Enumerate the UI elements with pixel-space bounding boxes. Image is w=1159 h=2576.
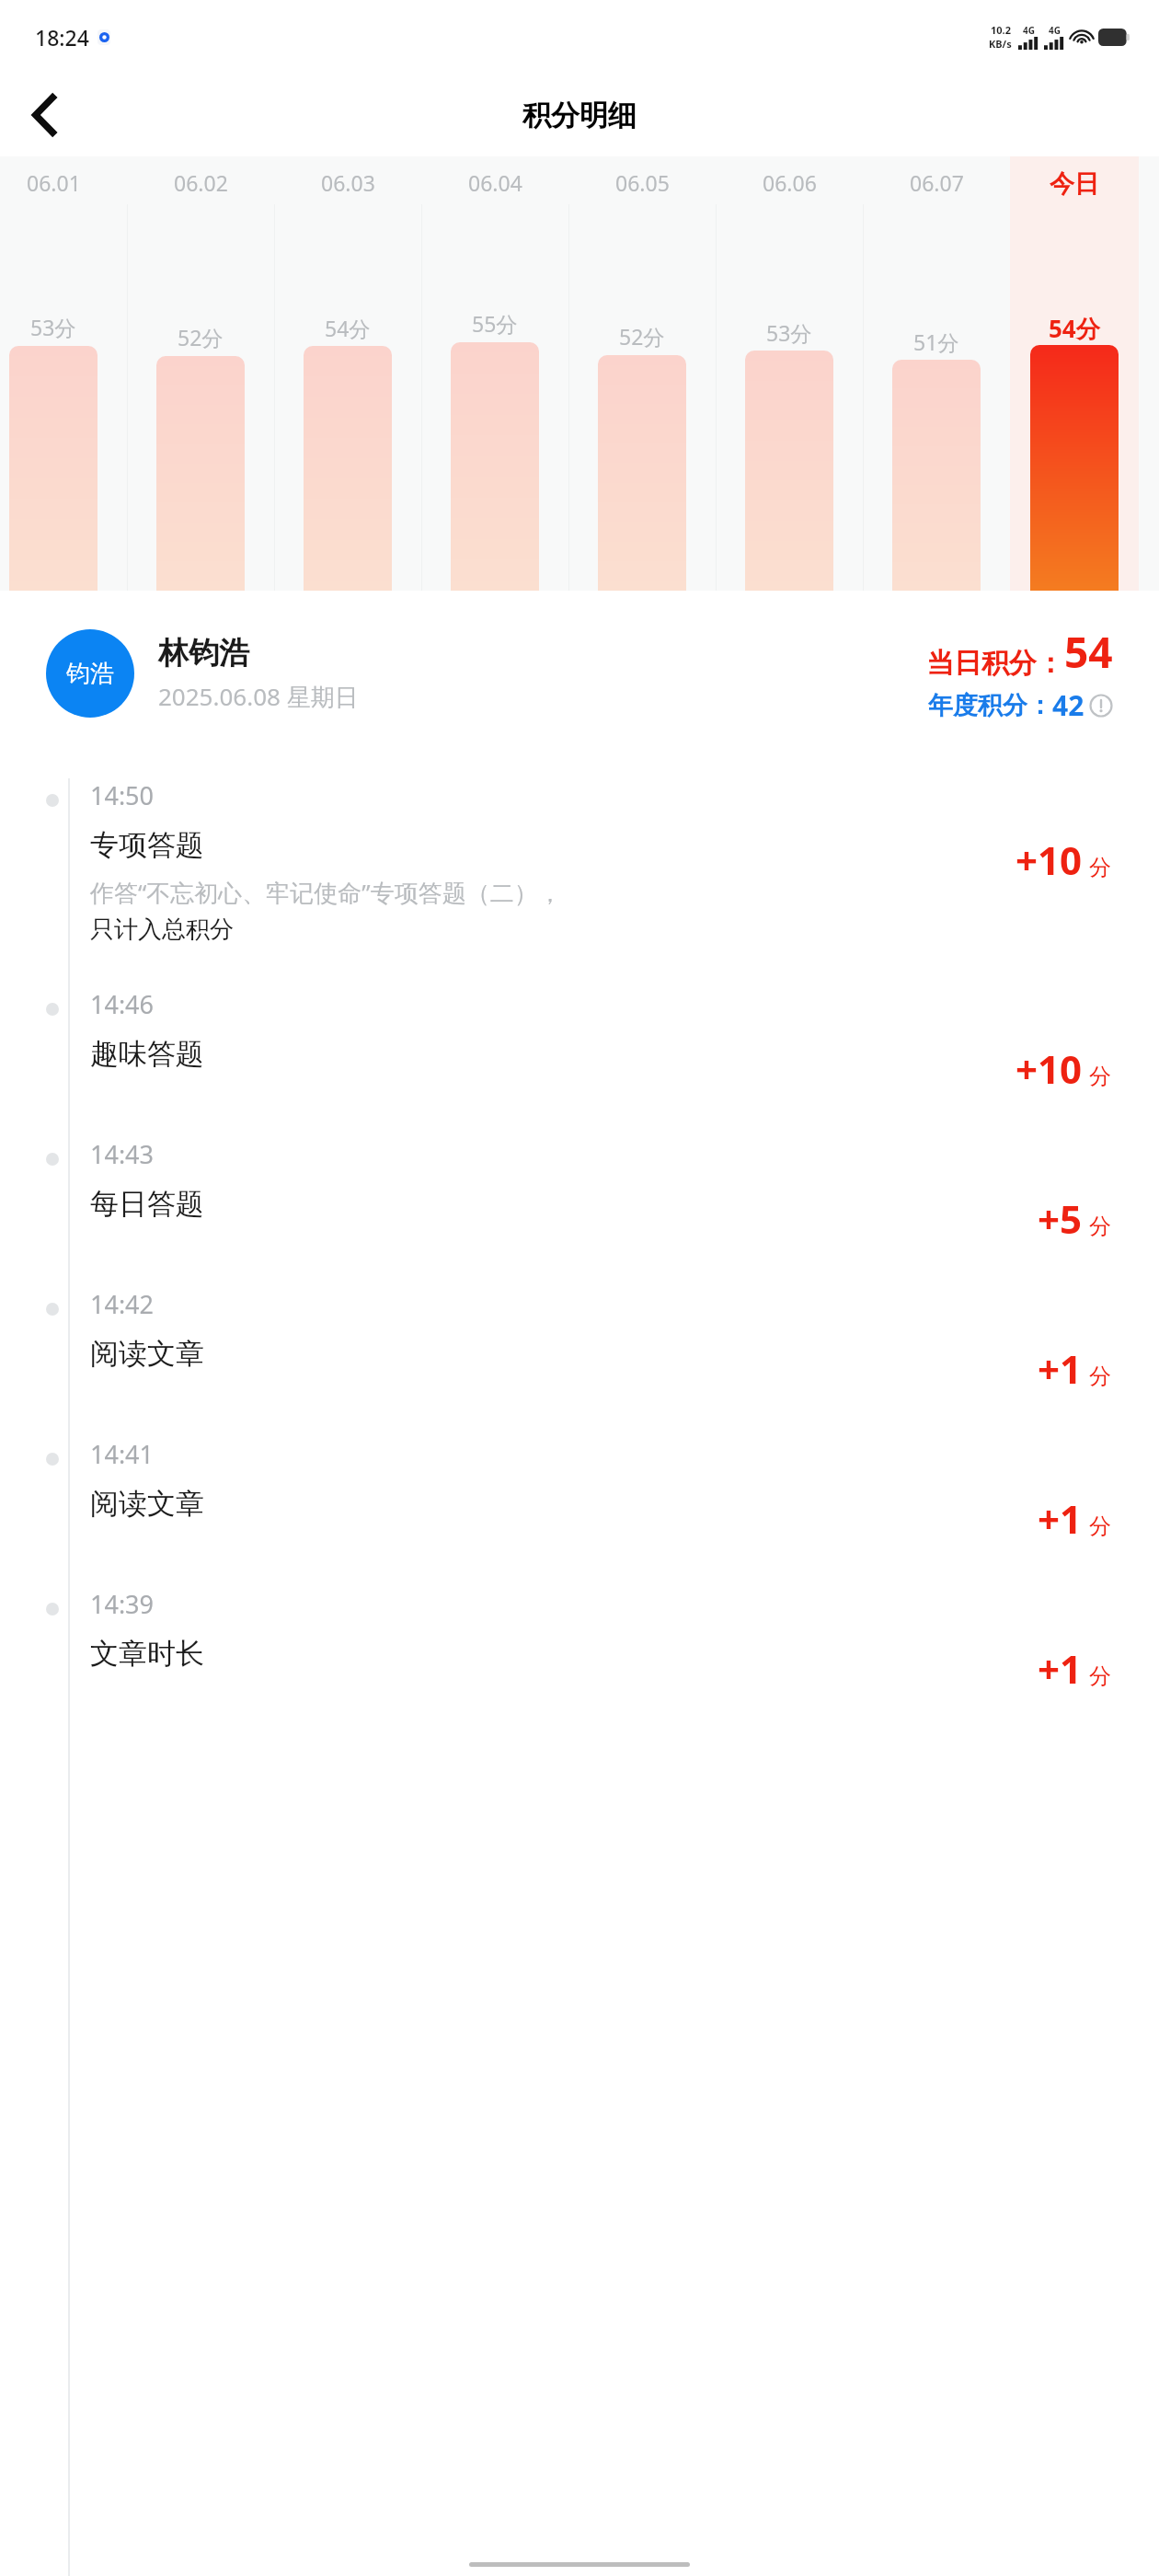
staticText: 14:39 [90, 1587, 155, 1621]
button[interactable]: 06.01 [0, 156, 127, 591]
staticText: 今日 [1050, 168, 1099, 200]
button[interactable]: 06.02 [127, 156, 274, 591]
staticText: 作答“不忘初心、牢记使命”专项答题（二）， [90, 876, 562, 909]
staticText: 4G [1049, 24, 1061, 37]
button[interactable]: 14:41 [0, 1415, 1159, 1565]
staticText: 06.02 [174, 168, 228, 197]
other: Info [1089, 694, 1113, 718]
staticText: 年度积分： [928, 690, 1052, 721]
button[interactable]: 06.04 [421, 156, 568, 591]
staticText: 林钧浩 [158, 634, 249, 673]
button[interactable]: 钧浩 [0, 591, 1159, 756]
staticText: 分 [1089, 1213, 1111, 1240]
staticText: 分 [1089, 1662, 1111, 1690]
staticText: 52分 [178, 323, 224, 351]
staticText: 钧浩 [66, 659, 114, 689]
staticText: 14:50 [90, 778, 155, 812]
button[interactable]: 14:39 [0, 1565, 1159, 1715]
button[interactable]: 06.07 [863, 156, 1010, 591]
staticText: 06.05 [615, 168, 670, 197]
button[interactable]: Back [18, 89, 70, 141]
staticText: 阅读文章 [90, 1336, 204, 1372]
staticText: 趣味答题 [90, 1036, 204, 1072]
button[interactable]: 06.03 [274, 156, 421, 591]
staticText: 文章时长 [90, 1636, 204, 1672]
staticText: +1 [1038, 1492, 1083, 1545]
staticText: 当日积分： [926, 646, 1064, 681]
staticText: 阅读文章 [90, 1486, 204, 1522]
staticText: 55分 [472, 309, 518, 338]
staticText: 54 [1064, 623, 1113, 681]
staticText: 06.03 [321, 168, 375, 197]
staticText: 14:46 [90, 987, 155, 1021]
staticText: 14:41 [90, 1437, 155, 1471]
staticText: 专项答题 [90, 827, 204, 863]
staticText: 06.01 [27, 168, 81, 197]
staticText: +10 [1016, 834, 1083, 886]
staticText: 分 [1089, 1063, 1111, 1090]
button[interactable]: 14:46 [0, 965, 1159, 1115]
staticText: 42 [1052, 686, 1084, 724]
staticText: +1 [1038, 1642, 1083, 1695]
button[interactable]: 14:42 [0, 1265, 1159, 1415]
staticText: 每日答题 [90, 1186, 204, 1222]
staticText: 只计入总积分 [90, 914, 234, 945]
staticText: KB/s [989, 37, 1012, 51]
staticText: 2025.06.08 星期日 [158, 680, 359, 713]
staticText: +1 [1038, 1342, 1083, 1395]
staticText: 06.07 [910, 168, 964, 197]
staticText: 53分 [30, 313, 76, 341]
staticText: 分 [1089, 1512, 1111, 1540]
button[interactable]: 14:43 [0, 1115, 1159, 1265]
staticText: 4G [1023, 24, 1035, 37]
button[interactable]: 06.06 [716, 156, 863, 591]
staticText: 分 [1089, 1363, 1111, 1390]
button[interactable]: 今日 [1010, 156, 1139, 591]
staticText: 18:24 [35, 23, 89, 52]
button[interactable]: 14:50 [0, 756, 1159, 965]
staticText: 14:43 [90, 1137, 155, 1171]
staticText: 53分 [766, 318, 812, 347]
staticText: 06.06 [763, 168, 817, 197]
staticText: 52分 [619, 322, 665, 351]
staticText: 积分明细 [522, 98, 637, 133]
staticText: 分 [1089, 854, 1111, 881]
staticText: 51分 [913, 328, 959, 356]
staticText: 14:42 [90, 1287, 155, 1321]
staticText: 54分 [1049, 312, 1100, 345]
button[interactable]: 06.05 [568, 156, 716, 591]
staticText: +10 [1016, 1042, 1083, 1095]
staticText: 06.04 [468, 168, 522, 197]
staticText: 10.2 [991, 23, 1011, 37]
staticText: +5 [1038, 1192, 1083, 1245]
staticText: 54分 [325, 314, 371, 342]
